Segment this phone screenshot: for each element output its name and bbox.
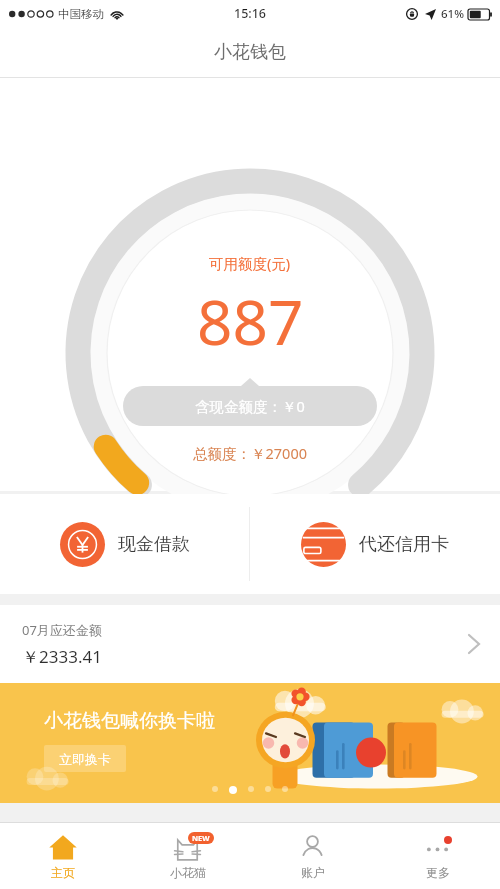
- staticText: 主页: [51, 865, 75, 880]
- button[interactable]: 小花钱包喊你换卡啦: [0, 683, 500, 803]
- other: 小花猫: [174, 834, 201, 861]
- staticText: 07月应还金额: [22, 621, 102, 639]
- other: 主页: [49, 833, 77, 861]
- staticText: 小花猫: [170, 865, 206, 880]
- staticText: 小花钱包喊你换卡啦: [44, 709, 215, 733]
- button[interactable]: 含现金额度：￥0: [123, 386, 377, 426]
- staticText: 总额度：￥27000: [193, 443, 307, 463]
- staticText: 代还信用卡: [359, 533, 449, 556]
- staticText: NEW: [192, 833, 210, 843]
- staticText: 887: [197, 279, 304, 363]
- button[interactable]: 主页: [0, 823, 125, 889]
- button[interactable]: 更多: [375, 823, 500, 889]
- staticText: 立即换卡: [59, 751, 111, 767]
- button[interactable]: 现金借款: [0, 494, 249, 594]
- button[interactable]: 账户: [250, 823, 375, 889]
- staticText: 更多: [426, 865, 450, 880]
- other: 更多: [424, 837, 451, 857]
- staticText: 可用额度(元): [209, 253, 291, 273]
- other: 账户: [299, 834, 326, 861]
- other: 查看详情: [468, 634, 480, 654]
- staticText: 15:16: [234, 5, 267, 22]
- staticText: 含现金额度：￥0: [195, 396, 305, 416]
- staticText: 账户: [301, 865, 325, 880]
- button[interactable]: 立即换卡: [44, 745, 126, 772]
- button[interactable]: 07月应还金额: [0, 605, 500, 683]
- staticText: 现金借款: [118, 533, 190, 556]
- staticText: ￥2333.41: [22, 645, 102, 668]
- staticText: 小花钱包: [214, 41, 286, 64]
- staticText: 中国移动: [58, 7, 104, 21]
- button[interactable]: 小花猫: [125, 823, 250, 889]
- staticText: 61%: [441, 6, 464, 22]
- button[interactable]: 代还信用卡: [250, 494, 500, 594]
